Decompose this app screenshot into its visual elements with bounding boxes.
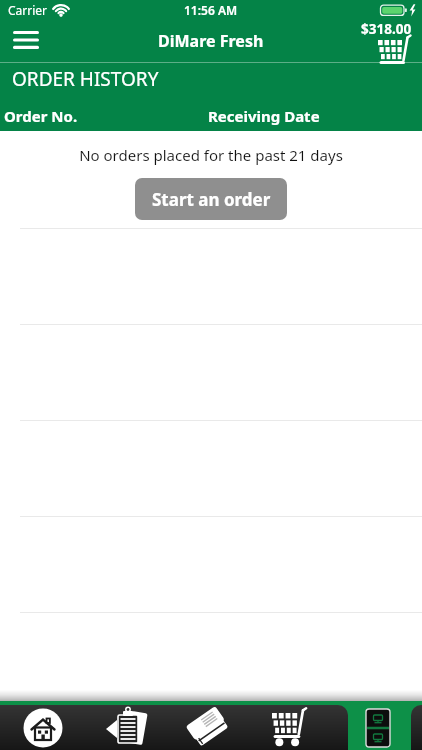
staticText: Start an order	[152, 188, 271, 211]
staticText: Receiving Date	[208, 106, 320, 126]
staticText: $318.00	[361, 20, 412, 38]
staticText: ORDER HISTORY	[12, 66, 159, 92]
button[interactable]	[92, 705, 157, 750]
button[interactable]	[257, 705, 322, 750]
button[interactable]: $318.00	[361, 20, 412, 62]
button[interactable]: Start an order	[135, 178, 287, 220]
staticText: Carrier	[8, 2, 48, 18]
button[interactable]	[6, 24, 46, 58]
staticText: DiMare Fresh	[158, 30, 264, 52]
staticText: 11:56 AM	[184, 2, 238, 18]
button[interactable]	[346, 705, 410, 750]
staticText: Order No.	[4, 106, 78, 126]
button[interactable]	[175, 705, 240, 750]
button[interactable]	[10, 705, 75, 750]
staticText: No orders placed for the past 21 days	[0, 145, 422, 165]
